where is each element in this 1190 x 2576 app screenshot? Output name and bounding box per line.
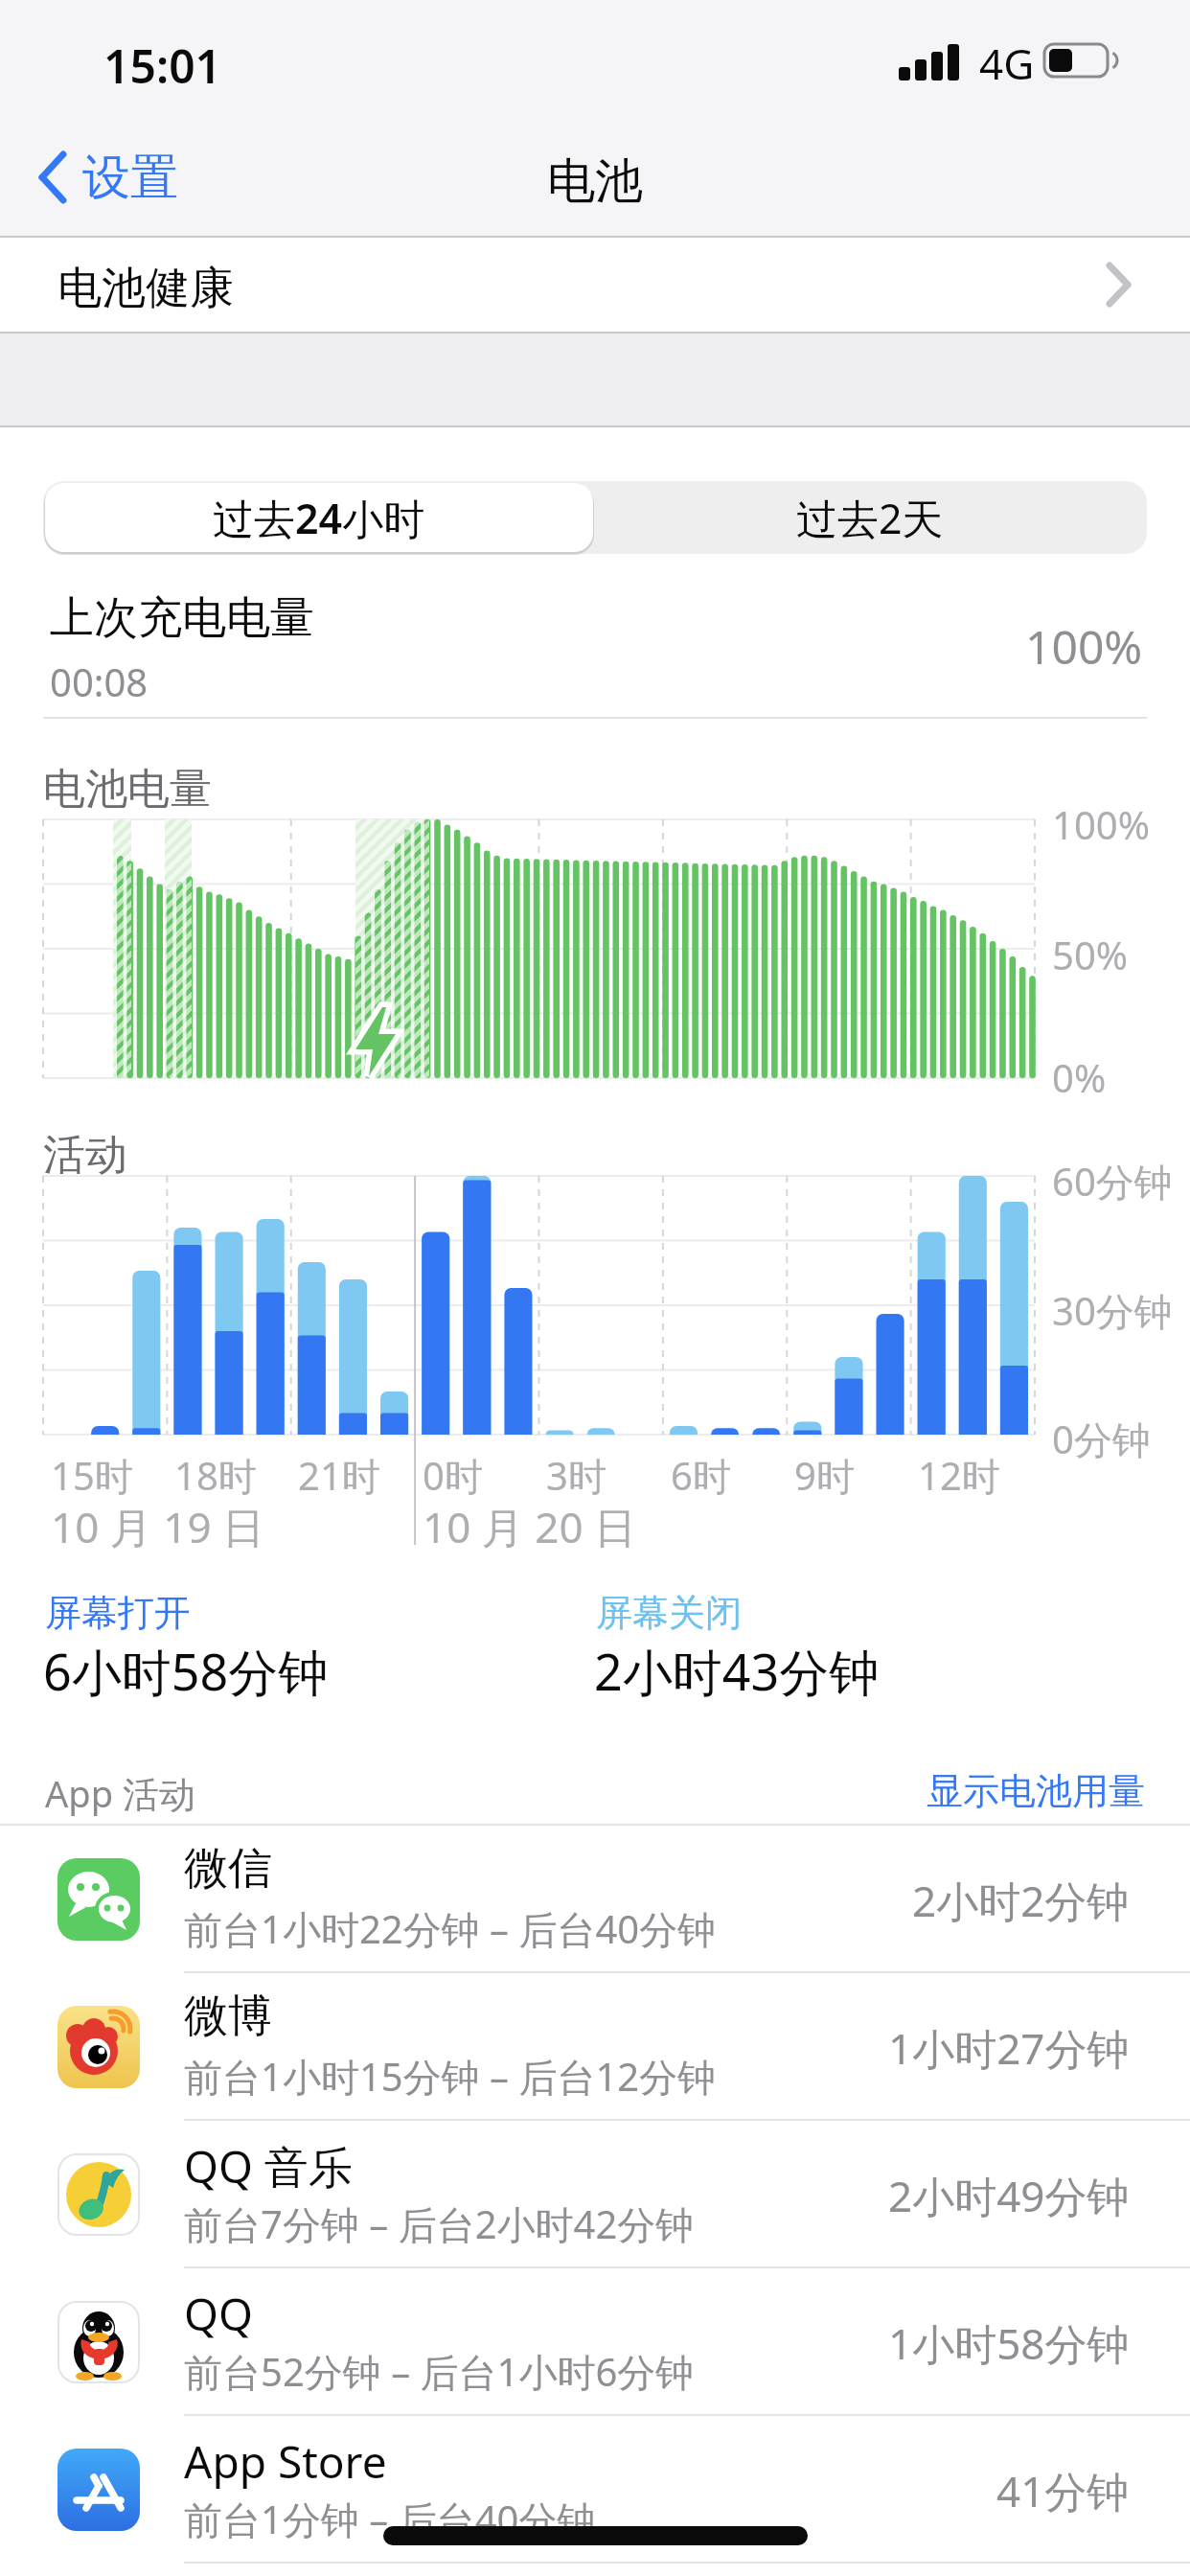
staticText: 18时 (174, 1449, 257, 1502)
staticText: App 活动 (45, 1768, 195, 1818)
staticText: 30分钟 (1052, 1284, 1173, 1337)
staticText: 1小时27分钟 (888, 2019, 1130, 2077)
staticText: 10 月 19 日 (51, 1498, 264, 1555)
staticText: 2小时43分钟 (594, 1637, 880, 1705)
staticText: 9时 (794, 1449, 855, 1502)
button[interactable]: 电池健康 (0, 238, 1190, 332)
button[interactable]: QQ (0, 2268, 1190, 2416)
staticText: 41分钟 (996, 2462, 1130, 2519)
staticText: 21时 (298, 1449, 380, 1502)
staticText: 15:01 (103, 34, 222, 97)
staticText: 屏幕关闭 (596, 1590, 742, 1636)
button[interactable]: 微信 (0, 1826, 1190, 1973)
staticText: 3时 (546, 1449, 606, 1502)
staticText: 微信 (184, 1841, 272, 1897)
staticText: 1小时58分钟 (888, 2314, 1130, 2372)
staticText: 上次充电电量 (50, 590, 314, 646)
staticText: 00:08 (50, 655, 149, 707)
staticText: 前台1分钟 – 后台40分钟 (184, 2493, 596, 2545)
staticText: 前台7分钟 – 后台2小时42分钟 (184, 2197, 695, 2250)
button[interactable]: 过去2天 (595, 483, 1145, 552)
staticText: 过去2天 (796, 490, 944, 546)
button[interactable]: 设置 (29, 144, 240, 220)
staticText: 2小时2分钟 (912, 1872, 1130, 1929)
staticText: 电池 (547, 151, 643, 209)
button[interactable]: 微博 (0, 1973, 1190, 2121)
staticText: 10 月 20 日 (423, 1498, 636, 1555)
button[interactable]: App Store (0, 2416, 1190, 2564)
staticText: 15时 (51, 1449, 133, 1502)
staticText: 2小时49分钟 (888, 2167, 1130, 2224)
staticText: 100% (1025, 615, 1143, 678)
staticText: 前台1小时22分钟 – 后台40分钟 (184, 1902, 717, 1955)
button[interactable]: QQ 音乐 (0, 2121, 1190, 2268)
staticText: 前台52分钟 – 后台1小时6分钟 (184, 2345, 695, 2398)
staticText: 0时 (423, 1449, 483, 1502)
staticText: 4G (979, 34, 1035, 92)
button[interactable]: 显示电池用量 (927, 1768, 1145, 1814)
staticText: 12时 (918, 1449, 1000, 1502)
staticText: 屏幕打开 (45, 1590, 191, 1636)
staticText: 50% (1052, 929, 1128, 980)
staticText: 前台1小时15分钟 – 后台12分钟 (184, 2050, 717, 2103)
staticText: 过去24小时 (213, 490, 425, 546)
staticText: QQ 音乐 (184, 2136, 353, 2196)
button[interactable]: 过去24小时 (45, 483, 593, 552)
staticText: 电池电量 (43, 763, 212, 816)
staticText: 100% (1052, 798, 1150, 850)
staticText: 0% (1052, 1051, 1107, 1103)
staticText: App Store (184, 2431, 387, 2492)
staticText: 设置 (82, 148, 178, 208)
staticText: QQ (184, 2284, 253, 2344)
staticText: 60分钟 (1052, 1155, 1173, 1207)
staticText: 6时 (671, 1449, 731, 1502)
staticText: 微博 (184, 1989, 272, 2044)
staticText: 电池健康 (57, 261, 234, 316)
staticText: 活动 (43, 1129, 127, 1182)
staticText: 6小时58分钟 (43, 1637, 329, 1705)
staticText: 0分钟 (1052, 1413, 1151, 1465)
